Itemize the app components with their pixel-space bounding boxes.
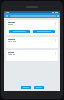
button[interactable]: Action (21, 86, 31, 89)
button[interactable]: More options (6, 20, 58, 35)
button[interactable]: More options (54, 52, 57, 55)
button[interactable]: More options (54, 39, 57, 42)
button[interactable]: More options (6, 50, 58, 61)
button[interactable]: Action (9, 30, 30, 33)
button[interactable]: Action (33, 30, 55, 33)
button[interactable]: Navigate up (5, 14, 9, 18)
button[interactable]: Action (34, 86, 44, 89)
button[interactable]: More options (56, 14, 59, 17)
button[interactable]: More options (6, 37, 58, 48)
button[interactable]: More options (54, 22, 57, 25)
